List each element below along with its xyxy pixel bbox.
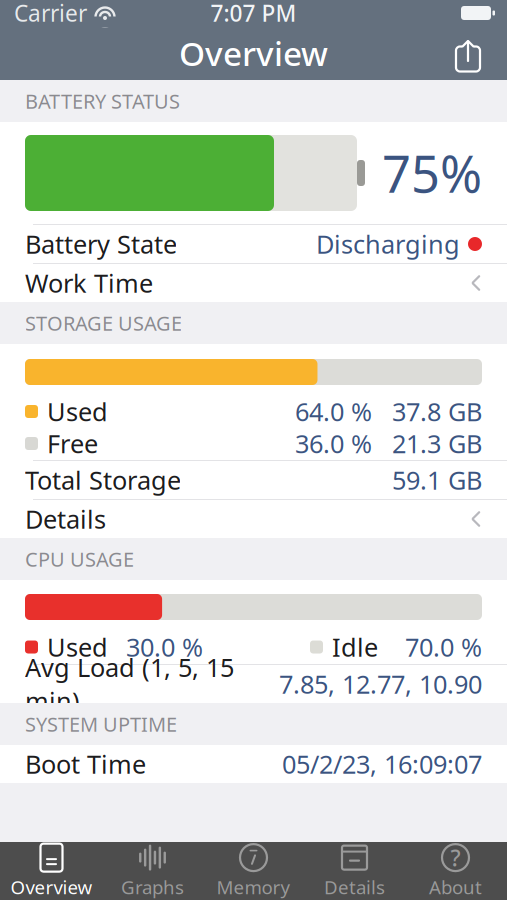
staticText: 59.1 GB: [392, 463, 482, 497]
staticText: 37.8 GB: [392, 395, 482, 428]
staticText: 75%: [382, 139, 482, 207]
staticText: Memory: [216, 875, 290, 899]
staticText: Total Storage: [25, 463, 181, 497]
button[interactable]: Overview: [1, 840, 102, 900]
button[interactable]: Share: [443, 29, 493, 77]
button[interactable]: Details: [0, 500, 507, 538]
staticText: 7:07 PM: [210, 0, 296, 28]
staticText: 21.3 GB: [392, 427, 482, 460]
staticText: Battery State: [25, 227, 177, 261]
staticText: Boot Time: [25, 747, 146, 781]
staticText: ?: [450, 843, 460, 873]
staticText: 7.85, 12.77, 10.90: [279, 667, 482, 701]
staticText: Free: [47, 427, 98, 460]
staticText: BATTERY STATUS: [25, 88, 180, 114]
button[interactable]: ?: [405, 840, 506, 900]
staticText: Overview: [10, 875, 92, 899]
staticText: Details: [25, 502, 106, 536]
staticText: 05/2/23, 16:09:07: [282, 747, 482, 781]
staticText: Overview: [179, 31, 328, 75]
staticText: Work Time: [25, 266, 153, 300]
button[interactable]: Boot Time: [0, 745, 507, 783]
staticText: Avg Load (1, 5, 15 min): [25, 650, 234, 718]
button[interactable]: Total Storage: [0, 461, 507, 499]
button[interactable]: Battery State: [0, 225, 507, 263]
staticText: SYSTEM UPTIME: [25, 711, 177, 737]
button[interactable]: Avg Load (1, 5, 15 min): [0, 665, 507, 703]
staticText: STORAGE USAGE: [25, 310, 182, 336]
staticText: About: [429, 875, 482, 899]
staticText: Discharging: [316, 227, 460, 261]
staticText: Graphs: [121, 875, 184, 899]
staticText: 64.0 %: [295, 395, 372, 428]
staticText: 36.0 %: [295, 427, 372, 460]
button[interactable]: Details: [304, 840, 405, 900]
staticText: 30.0 %: [126, 630, 203, 664]
button[interactable]: Memory: [203, 840, 304, 900]
staticText: Idle: [332, 630, 378, 664]
staticText: Details: [324, 875, 385, 899]
button[interactable]: Work Time: [0, 264, 507, 302]
staticText: CPU USAGE: [25, 546, 134, 572]
button[interactable]: Graphs: [102, 840, 203, 900]
staticText: Used: [47, 630, 108, 664]
staticText: Carrier: [14, 0, 87, 28]
staticText: 70.0 %: [405, 630, 482, 664]
staticText: Used: [47, 395, 108, 428]
